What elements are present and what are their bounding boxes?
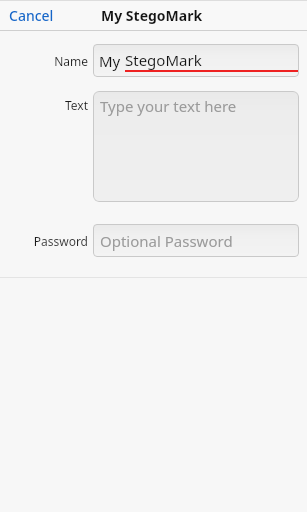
button[interactable]: Cancel — [0, 0, 64, 31]
staticText: StegoMark — [125, 50, 202, 70]
staticText: Optional Password — [100, 231, 233, 251]
button[interactable]: Type your text here — [93, 91, 299, 202]
staticText: My — [99, 51, 125, 71]
staticText: Cancel — [9, 6, 54, 25]
staticText: Password — [33, 233, 88, 249]
staticText: Type your text here — [100, 96, 237, 116]
staticText: My StegoMark — [101, 6, 203, 25]
button[interactable]: Optional Password — [93, 224, 299, 257]
button[interactable]: My — [93, 44, 299, 77]
staticText: Text — [64, 97, 88, 113]
staticText: Name — [54, 53, 88, 69]
